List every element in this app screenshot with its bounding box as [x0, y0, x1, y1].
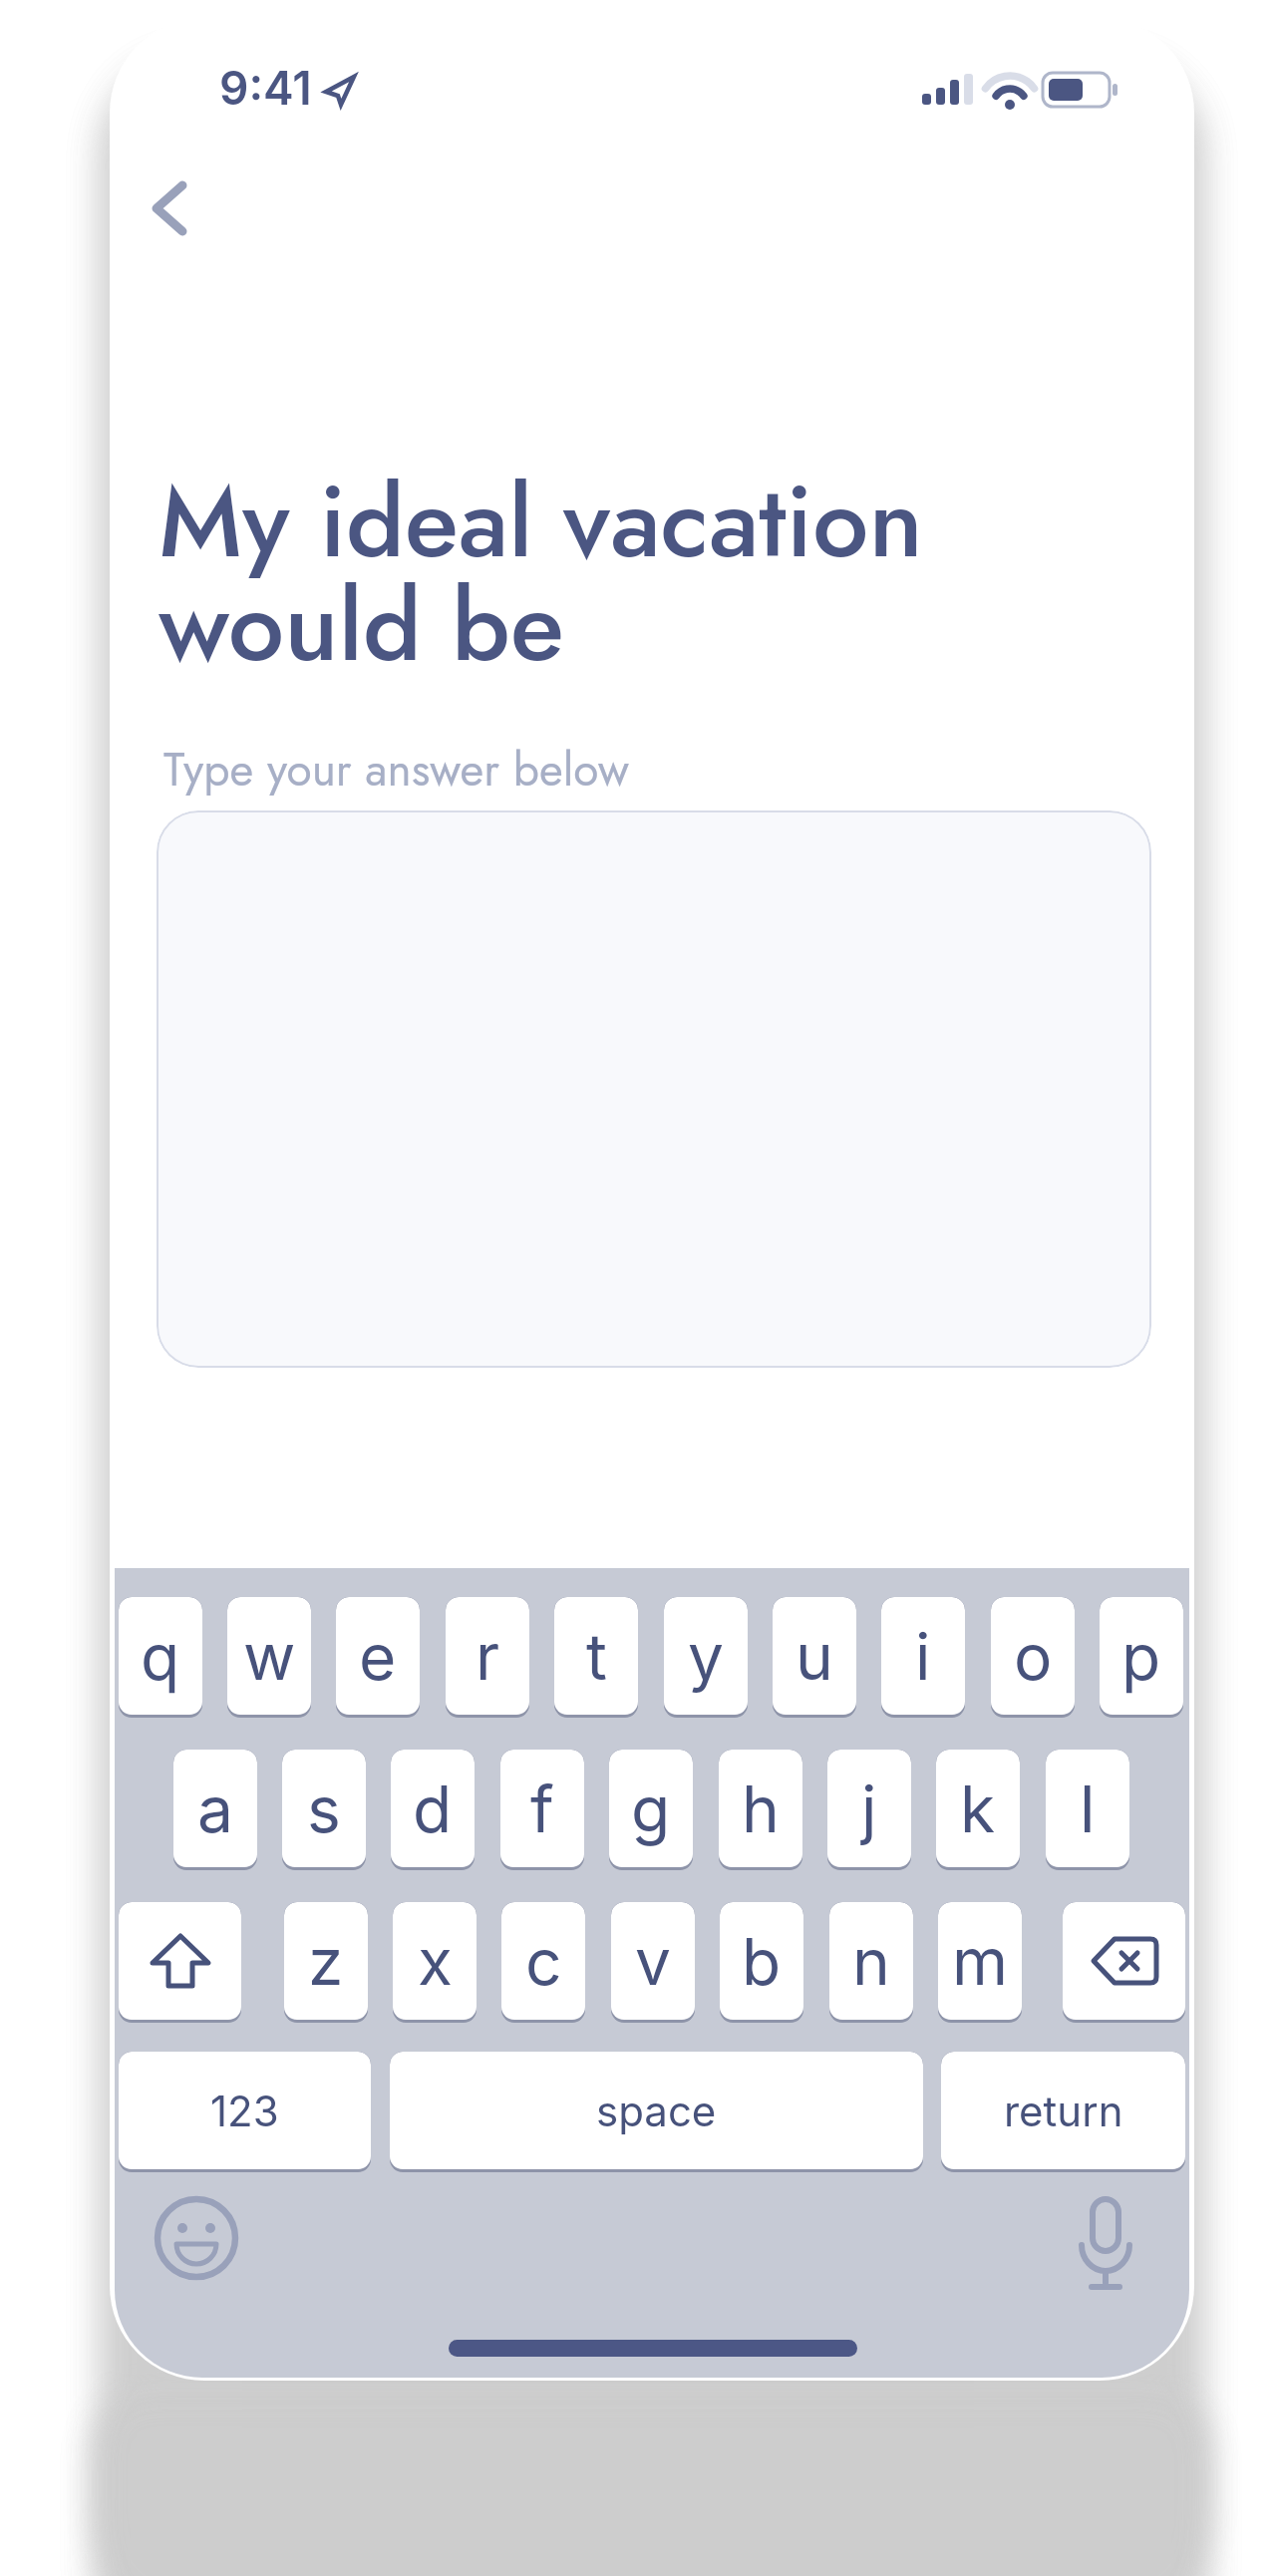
staticText: return	[1004, 2086, 1123, 2136]
button[interactable]: s	[282, 1750, 366, 1870]
staticText: x	[418, 1923, 453, 2000]
staticText: u	[796, 1618, 833, 1695]
staticText: My ideal vacation	[159, 450, 923, 594]
staticText: r	[476, 1618, 500, 1695]
staticText: v	[635, 1923, 671, 2000]
staticText: j	[861, 1771, 877, 1847]
button[interactable]: i	[881, 1597, 965, 1718]
button[interactable]	[157, 810, 1151, 1368]
button[interactable]: k	[936, 1750, 1020, 1870]
button[interactable]	[1066, 2195, 1145, 2299]
staticText: would be	[159, 553, 564, 698]
button[interactable]	[119, 1902, 241, 2023]
button[interactable]: 123	[119, 2052, 371, 2172]
button[interactable]: j	[827, 1750, 911, 1870]
staticText: c	[525, 1923, 562, 2000]
button[interactable]: d	[391, 1750, 475, 1870]
button[interactable]: a	[173, 1750, 257, 1870]
button[interactable]: w	[227, 1597, 311, 1718]
button[interactable]: z	[284, 1902, 368, 2023]
staticText: q	[141, 1618, 180, 1695]
staticText: p	[1121, 1618, 1161, 1695]
staticText: h	[742, 1771, 780, 1847]
button[interactable]: y	[664, 1597, 748, 1718]
staticText: t	[586, 1618, 607, 1695]
staticText: n	[852, 1923, 890, 2000]
staticText: e	[359, 1618, 397, 1695]
button[interactable]: m	[938, 1902, 1022, 2023]
button[interactable]	[130, 158, 209, 257]
staticText: s	[307, 1771, 341, 1847]
button[interactable]: b	[720, 1902, 803, 2023]
staticText: a	[197, 1771, 233, 1847]
staticText: 123	[210, 2086, 279, 2136]
button[interactable]: return	[941, 2052, 1185, 2172]
staticText: Type your answer below	[163, 737, 629, 803]
staticText: z	[308, 1923, 344, 2000]
button[interactable]: c	[501, 1902, 585, 2023]
button[interactable]: r	[446, 1597, 529, 1718]
button[interactable]: q	[119, 1597, 202, 1718]
button[interactable]: space	[390, 2052, 923, 2172]
staticText: b	[742, 1923, 782, 2000]
button[interactable]: f	[500, 1750, 584, 1870]
button[interactable]: x	[393, 1902, 477, 2023]
button[interactable]: t	[554, 1597, 638, 1718]
button[interactable]: v	[611, 1902, 695, 2023]
staticText: w	[243, 1618, 296, 1695]
staticText: space	[596, 2086, 717, 2136]
button[interactable]	[153, 2194, 240, 2282]
staticText: 9:41	[219, 60, 312, 116]
staticText: k	[960, 1771, 996, 1847]
staticText: m	[952, 1923, 1009, 2000]
button[interactable]: u	[773, 1597, 856, 1718]
button[interactable]: p	[1100, 1597, 1183, 1718]
staticText: i	[915, 1618, 931, 1695]
button[interactable]: o	[991, 1597, 1075, 1718]
staticText: y	[688, 1618, 724, 1695]
button[interactable]	[1063, 1902, 1185, 2023]
staticText: o	[1014, 1618, 1053, 1695]
button[interactable]: g	[609, 1750, 693, 1870]
staticText: f	[530, 1771, 554, 1847]
button[interactable]: e	[336, 1597, 420, 1718]
button[interactable]: n	[829, 1902, 913, 2023]
staticText: g	[631, 1771, 671, 1847]
staticText: l	[1080, 1771, 1096, 1847]
button[interactable]: h	[719, 1750, 802, 1870]
staticText: d	[413, 1771, 453, 1847]
button[interactable]: l	[1046, 1750, 1129, 1870]
